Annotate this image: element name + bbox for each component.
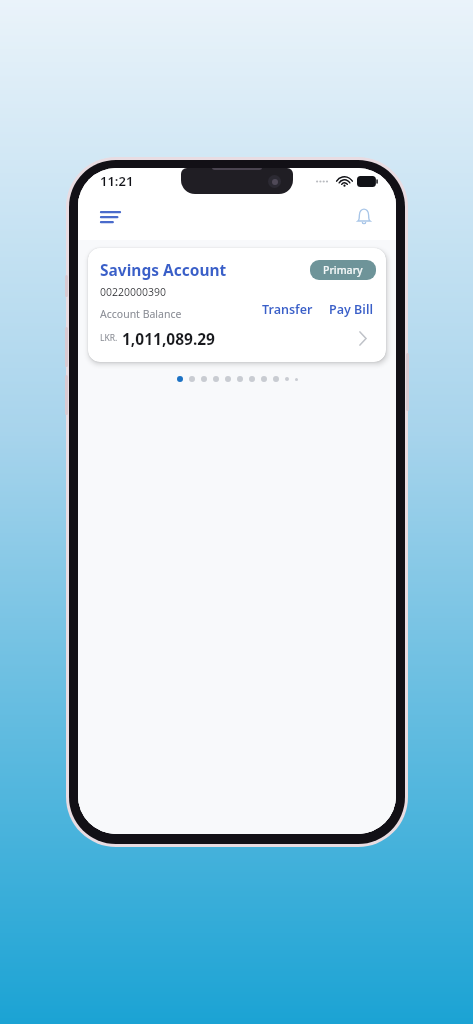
staticText: 00220000390 [100,285,167,299]
button[interactable]: Primary [310,260,376,280]
button[interactable]: Transfer [259,298,316,321]
staticText: 11:21 [100,172,134,190]
staticText: Primary [323,263,363,277]
staticText: Transfer [262,301,313,318]
staticText: LKR. [100,332,118,344]
button[interactable]: Savings Account [88,248,386,362]
button[interactable]: Notifications [346,199,382,235]
staticText: Savings Account [100,259,227,280]
button[interactable]: Menu [92,199,128,235]
button[interactable]: Pay Bill [326,298,376,321]
staticText: Pay Bill [329,301,373,318]
staticText: Account Balance [100,307,182,321]
button[interactable]: Account details [350,325,376,351]
staticText: 1,011,089.29 [122,328,215,349]
